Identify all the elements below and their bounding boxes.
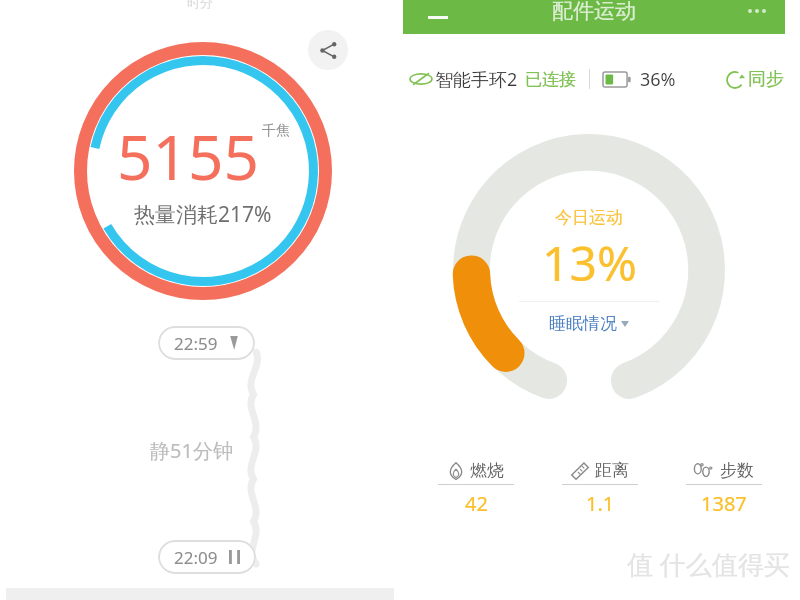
- staticText: 今日运动: [555, 207, 623, 228]
- button[interactable]: 同步: [721, 64, 788, 95]
- staticText: 睡眠情况: [549, 313, 617, 334]
- staticText: 静51分钟: [150, 437, 233, 464]
- staticText: 千焦: [262, 122, 290, 140]
- staticText: 5155: [117, 114, 259, 198]
- staticText: 22:09: [174, 546, 218, 569]
- button[interactable]: 距离: [546, 460, 654, 517]
- staticText: 时分: [187, 0, 213, 10]
- button[interactable]: Menu: [421, 0, 455, 34]
- button[interactable]: 22:59: [158, 326, 255, 360]
- staticText: 同步: [748, 68, 784, 91]
- staticText: 已连接: [525, 69, 576, 90]
- staticText: 热量消耗217%: [134, 200, 272, 229]
- button[interactable]: More options: [748, 9, 769, 13]
- staticText: 1387: [701, 490, 747, 517]
- button[interactable]: 步数: [670, 460, 778, 517]
- staticText: 配件运动: [552, 0, 636, 24]
- staticText: 13%: [542, 230, 637, 295]
- button[interactable]: 燃烧: [422, 460, 530, 517]
- staticText: 22:59: [174, 332, 218, 355]
- staticText: 燃烧: [470, 460, 504, 481]
- staticText: 步数: [720, 460, 754, 481]
- staticText: 值 什么值得买: [627, 546, 790, 582]
- staticText: 36%: [640, 67, 676, 92]
- staticText: 42: [465, 490, 488, 517]
- staticText: 智能手环2: [435, 67, 518, 92]
- button[interactable]: 22:09: [158, 540, 256, 574]
- button[interactable]: Share: [308, 30, 348, 70]
- staticText: 距离: [595, 460, 629, 481]
- button[interactable]: 今日运动: [505, 186, 673, 354]
- staticText: 1.1: [586, 490, 615, 517]
